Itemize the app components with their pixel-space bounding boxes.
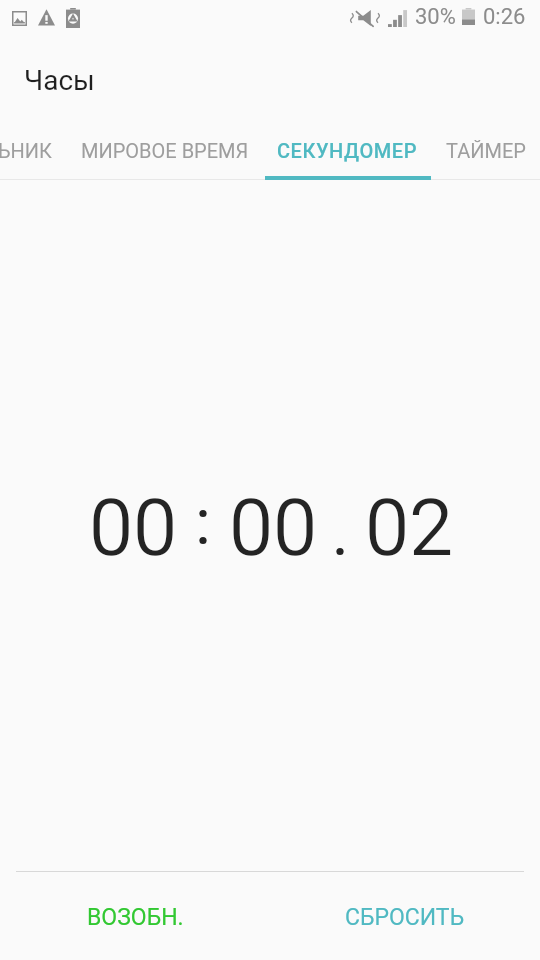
staticText: СБРОСИТЬ	[345, 904, 465, 931]
button[interactable]: ТАЙМЕР	[446, 139, 526, 162]
staticText: ВОЗОБН.	[87, 904, 184, 931]
staticText: 30%	[415, 4, 456, 30]
button[interactable]: ВОЗОБН.	[0, 872, 270, 960]
staticText: СЕКУНДОМЕР	[277, 139, 418, 162]
staticText: Часы	[24, 64, 95, 97]
staticText: МИРОВОЕ ВРЕМЯ	[81, 139, 249, 162]
button[interactable]: СБРОСИТЬ	[270, 872, 540, 960]
staticText: ТАЙМЕР	[446, 139, 526, 162]
staticText: 0:26	[483, 4, 526, 30]
button[interactable]: МИРОВОЕ ВРЕМЯ	[81, 139, 249, 162]
staticText: ЬНИК	[0, 139, 52, 162]
button[interactable]: ЬНИК	[0, 139, 52, 162]
button[interactable]: СЕКУНДОМЕР	[277, 139, 418, 162]
